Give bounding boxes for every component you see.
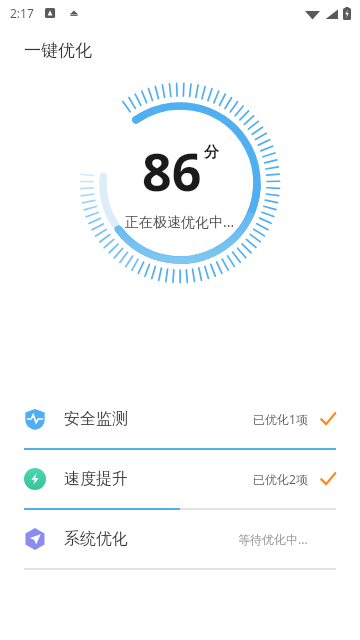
staticText: 已优化1项: [253, 411, 308, 427]
staticText: 正在极速优化中...: [125, 212, 235, 231]
staticText: 一键优化: [24, 40, 92, 61]
staticText: 速度提升: [64, 469, 128, 489]
other: Speed boost: [24, 468, 46, 490]
staticText: 2:17: [10, 5, 34, 21]
button[interactable]: Security scan: [0, 390, 360, 448]
staticText: 分: [204, 143, 219, 162]
staticText: 安全监测: [64, 409, 128, 429]
staticText: 等待优化中...: [238, 531, 308, 547]
button[interactable]: System optimization: [0, 510, 360, 568]
other: System optimization: [24, 528, 46, 550]
other: Security scan: [24, 408, 46, 430]
staticText: 系统优化: [64, 529, 128, 549]
button[interactable]: Speed boost: [0, 450, 360, 508]
staticText: 已优化2项: [253, 471, 308, 487]
staticText: 86: [142, 135, 202, 206]
